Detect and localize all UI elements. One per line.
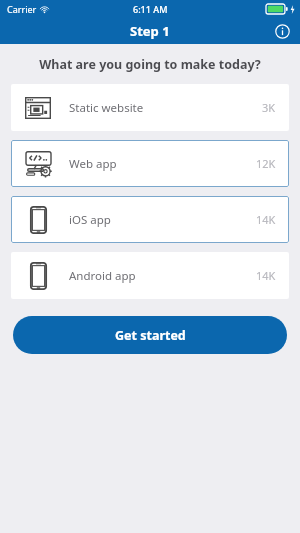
staticText: 14K [256, 212, 276, 227]
staticText: 12K [256, 156, 276, 171]
staticText: 6:11 AM [133, 3, 168, 15]
button[interactable]: Android app [11, 252, 289, 299]
staticText: Step 1 [130, 22, 170, 40]
button[interactable]: Static website [11, 84, 289, 131]
button[interactable]: iOS app [11, 196, 289, 243]
button[interactable]: Web app [11, 140, 289, 187]
staticText: Get started [115, 327, 186, 344]
staticText: Carrier [7, 3, 37, 15]
staticText: iOS app [69, 212, 111, 228]
staticText: Static website [69, 100, 144, 116]
staticText: What are you going to make today? [0, 56, 300, 73]
staticText: 3K [262, 100, 276, 115]
staticText: Android app [69, 268, 136, 284]
button[interactable]: Get started [13, 316, 287, 354]
button[interactable]: Info [272, 21, 292, 41]
staticText: 14K [256, 268, 276, 283]
staticText: Web app [69, 156, 117, 172]
